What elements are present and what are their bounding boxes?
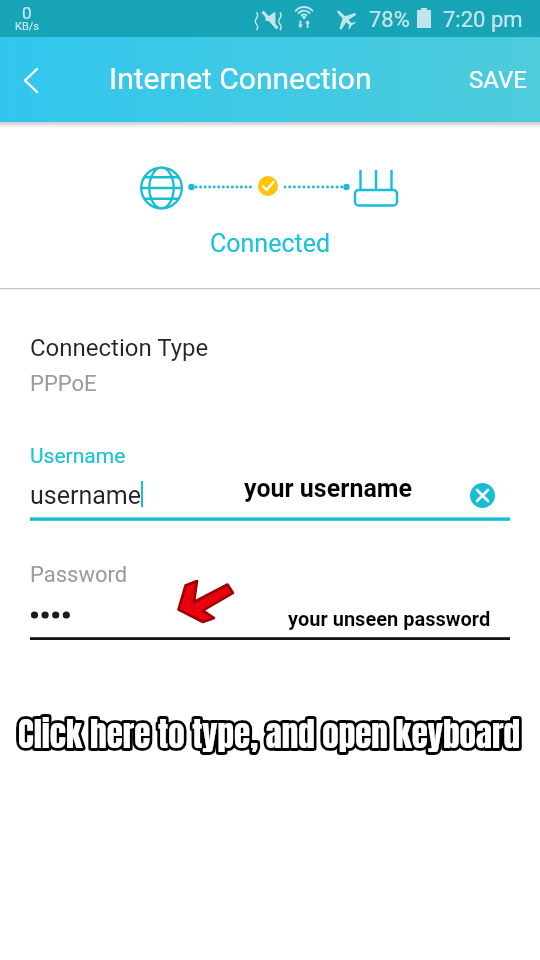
staticText: Password	[30, 562, 128, 588]
staticText: username	[30, 481, 141, 510]
staticText: Connection Type	[30, 334, 209, 362]
button[interactable]: username	[30, 478, 230, 512]
button[interactable]: Back	[0, 43, 62, 117]
staticText: your username	[244, 474, 412, 503]
button[interactable]	[30, 598, 230, 632]
button[interactable]: SAVE	[447, 48, 540, 112]
button[interactable]: Connection Type	[0, 322, 540, 400]
staticText: 78%	[369, 7, 410, 33]
staticText: your unseen password	[288, 607, 491, 630]
staticText: PPPoE	[30, 371, 97, 397]
staticText: Connected	[210, 229, 331, 258]
staticText: Internet Connection	[109, 61, 372, 96]
button[interactable]: Clear username	[468, 481, 497, 510]
staticText: Username	[30, 444, 126, 469]
staticText: SAVE	[469, 66, 527, 94]
staticText: KB/s	[15, 20, 39, 33]
staticText: 7:20 pm	[443, 7, 523, 33]
staticText: 0	[22, 3, 32, 23]
